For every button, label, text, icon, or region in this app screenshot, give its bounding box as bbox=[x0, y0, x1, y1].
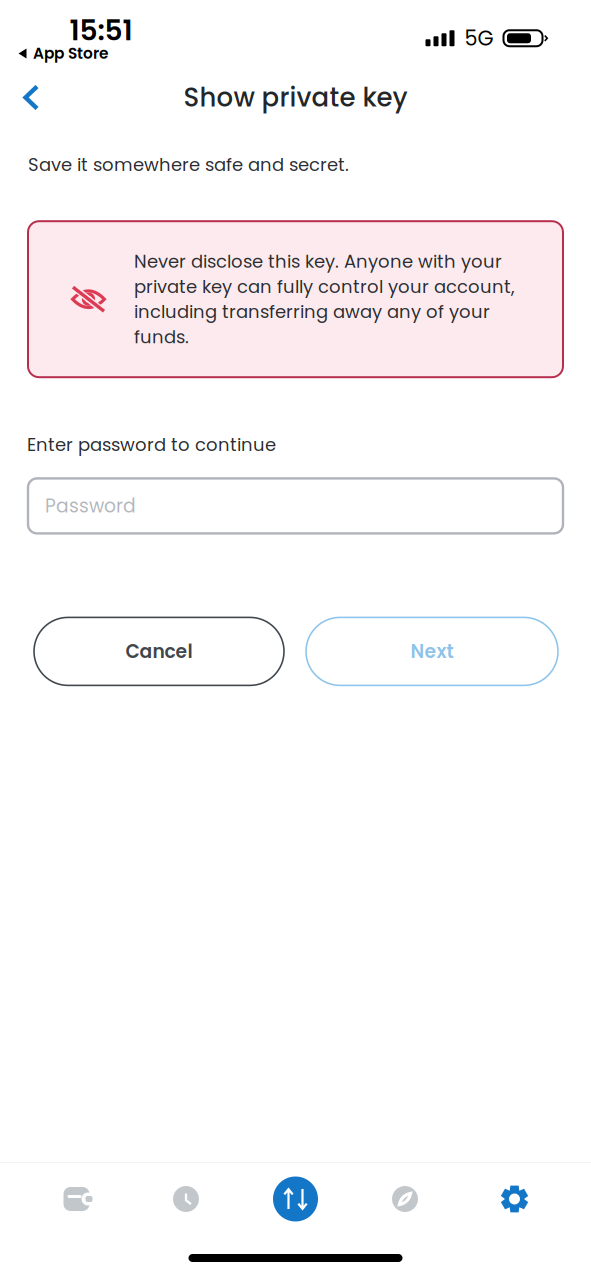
staticText: 15:51 bbox=[69, 11, 132, 50]
staticText: 5G bbox=[464, 24, 493, 53]
button[interactable]: Cancel bbox=[34, 617, 284, 685]
button[interactable]: Swap bbox=[241, 1163, 350, 1235]
staticText: Enter password to continue bbox=[27, 432, 276, 457]
button[interactable]: Next bbox=[306, 617, 558, 685]
button[interactable]: Settings bbox=[460, 1163, 569, 1235]
staticText: Show private key bbox=[183, 79, 407, 116]
button[interactable]: Wallet bbox=[22, 1163, 131, 1235]
staticText: Save it somewhere safe and secret. bbox=[28, 152, 349, 177]
staticText: Never disclose this key. Anyone with you… bbox=[134, 249, 515, 350]
staticText: App Store bbox=[33, 43, 108, 64]
staticText: Password bbox=[45, 493, 136, 519]
staticText: Cancel bbox=[125, 638, 192, 664]
button[interactable]: Browser bbox=[350, 1163, 460, 1235]
staticText: Next bbox=[410, 638, 453, 664]
button[interactable]: Back bbox=[0, 70, 62, 124]
button[interactable]: History bbox=[131, 1163, 241, 1235]
